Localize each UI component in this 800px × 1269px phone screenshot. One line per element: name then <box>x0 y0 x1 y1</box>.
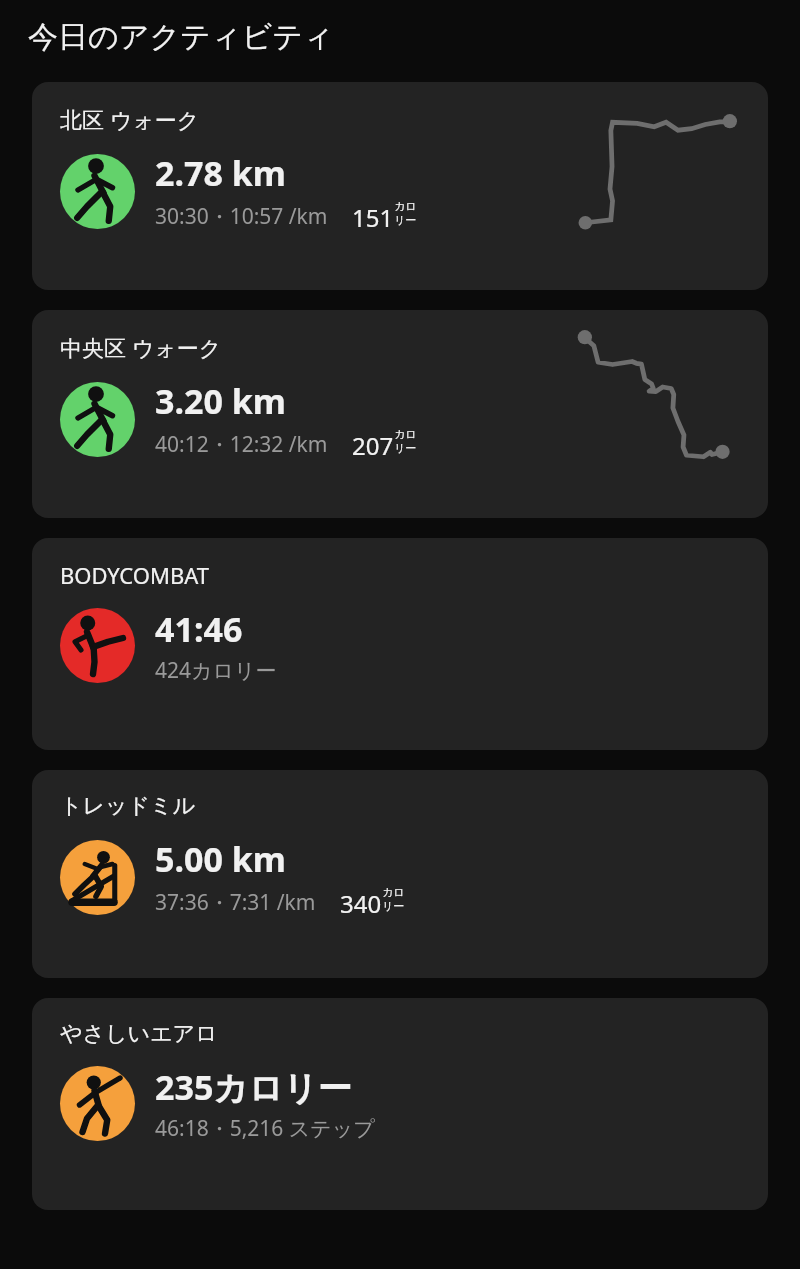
staticText: 46:18・5,216 ステップ <box>155 1114 375 1143</box>
other: ボディコンバット <box>60 608 135 683</box>
staticText: 3.20 km <box>155 378 286 424</box>
staticText: 151 <box>352 201 394 234</box>
staticText: 235カロリー <box>155 1064 352 1110</box>
staticText: カロ <box>394 427 417 441</box>
staticText: BODYCOMBAT <box>60 560 209 590</box>
button[interactable]: 北区 ウォーク <box>32 82 768 290</box>
staticText: 340 <box>340 887 382 920</box>
staticText: 207 <box>352 429 394 462</box>
staticText: カロ <box>382 885 405 899</box>
other: ウォーク <box>60 154 135 229</box>
staticText: トレッドミル <box>60 792 196 820</box>
staticText: 41:46 <box>155 606 243 652</box>
staticText: 424カロリー <box>155 656 277 685</box>
button[interactable]: BODYCOMBAT <box>32 538 768 750</box>
staticText: 中央区 ウォーク <box>60 332 222 362</box>
staticText: 5.00 km <box>155 836 286 882</box>
staticText: リー <box>394 441 417 455</box>
staticText: リー <box>382 899 405 913</box>
staticText: リー <box>394 213 417 227</box>
button[interactable]: やさしいエアロ <box>32 998 768 1210</box>
other: ウォーク <box>60 382 135 457</box>
button[interactable]: トレッドミル <box>32 770 768 978</box>
button[interactable]: 中央区 ウォーク <box>32 310 768 518</box>
staticText: 2.78 km <box>155 150 286 196</box>
other: トレッドミル <box>60 840 135 915</box>
staticText: やさしいエアロ <box>60 1020 218 1048</box>
staticText: カロ <box>394 199 417 213</box>
staticText: 今日のアクティビティ <box>28 18 334 56</box>
staticText: 30:30・10:57 /km <box>155 202 328 231</box>
other: エアロビクス <box>60 1066 135 1141</box>
staticText: 40:12・12:32 /km <box>155 430 328 459</box>
staticText: 北区 ウォーク <box>60 104 200 134</box>
staticText: 37:36・7:31 /km <box>155 888 316 917</box>
